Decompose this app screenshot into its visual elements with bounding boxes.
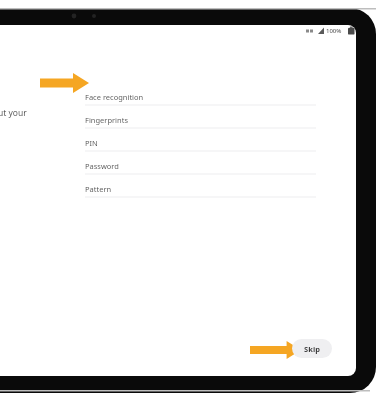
button[interactable]: PIN [85, 135, 316, 151]
staticText: Pattern [85, 184, 112, 194]
button[interactable]: Pattern [85, 181, 316, 197]
button[interactable]: Skip [292, 339, 332, 358]
button[interactable]: Password [85, 158, 316, 174]
staticText: Fingerprints [85, 115, 128, 125]
staticText: ut your [0, 107, 27, 119]
button[interactable]: Face recognition [85, 89, 316, 105]
staticText: Skip [304, 344, 320, 354]
staticText: PIN [85, 138, 98, 148]
other: Pointer to Face recognition [40, 73, 89, 93]
button[interactable]: Fingerprints [85, 112, 316, 128]
staticText: Password [85, 161, 119, 171]
staticText: Face recognition [85, 92, 144, 102]
other: Pointer to Skip [250, 341, 301, 359]
staticText: 100% [326, 27, 342, 35]
